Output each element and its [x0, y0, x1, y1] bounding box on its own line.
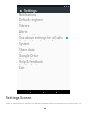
- button[interactable]: Use above settings for all calls: [17, 35, 70, 41]
- staticText: Use above settings for all calls: [19, 36, 63, 40]
- staticText: Send feedback: [19, 64, 38, 65]
- button[interactable]: Vibrate: [17, 23, 70, 29]
- staticText: Backup chats: [19, 58, 36, 59]
- staticText: Settings Screen: [6, 95, 32, 99]
- staticText: System: [19, 42, 30, 46]
- staticText: Default ringtone: [19, 18, 43, 22]
- button[interactable]: Exit: [17, 65, 70, 71]
- button[interactable]: System: [17, 41, 70, 47]
- staticText: Use for video and voice calls: [19, 40, 55, 41]
- button[interactable]: Share data: [17, 47, 70, 53]
- staticText: Google Drive: [19, 54, 38, 58]
- button[interactable]: Back: [19, 9, 22, 12]
- staticText: Help & feedback: [19, 60, 43, 64]
- staticText: Allow: [19, 52, 26, 53]
- staticText: Share data: [19, 48, 35, 52]
- staticText: Settings: [24, 8, 37, 12]
- staticText: Pop up notification: [19, 34, 43, 35]
- staticText: Notifications: [19, 13, 37, 17]
- staticText: Vibrate: [19, 24, 30, 28]
- button[interactable]: Help & feedback: [17, 59, 70, 65]
- button[interactable]: Google Drive: [17, 53, 70, 59]
- staticText: Tap a setting to open its detail panel a…: [6, 101, 82, 104]
- staticText: Hangouts message tone: [19, 22, 50, 23]
- staticText: Exit: [19, 66, 25, 70]
- staticText: Alerts: [19, 30, 28, 34]
- button[interactable]: Alerts: [17, 29, 70, 35]
- button[interactable]: Default ringtone: [17, 17, 70, 23]
